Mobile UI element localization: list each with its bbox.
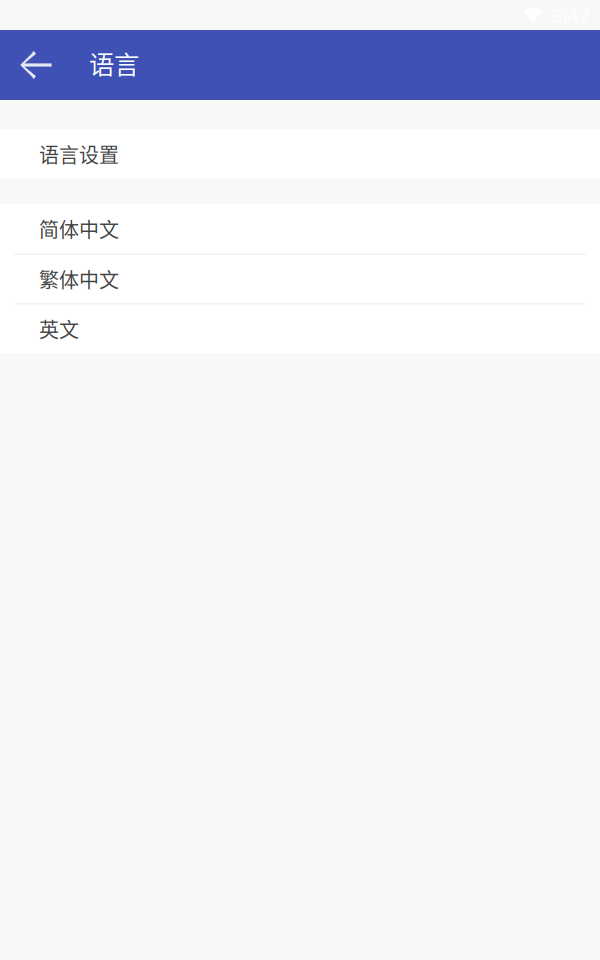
staticText: 英文 (39, 314, 79, 343)
staticText: 简体中文 (39, 214, 119, 243)
button[interactable]: 繁体中文 (0, 254, 600, 303)
staticText: 繁体中文 (39, 265, 119, 294)
staticText: 语言设置 (39, 139, 119, 168)
button[interactable]: 简体中文 (0, 204, 600, 254)
button[interactable]: 英文 (0, 303, 600, 353)
staticText: 语言 (89, 45, 139, 81)
button[interactable]: Back (0, 30, 72, 100)
